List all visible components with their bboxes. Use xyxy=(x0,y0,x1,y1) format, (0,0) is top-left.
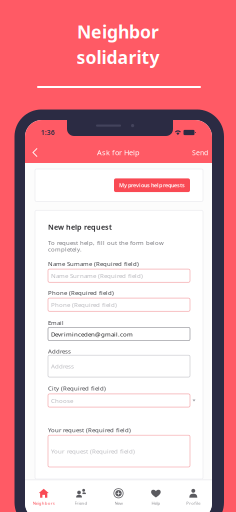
staticText: Name Surname (Required field) xyxy=(48,260,139,268)
button[interactable]: New xyxy=(100,486,137,508)
staticText: New help request xyxy=(48,222,112,232)
staticText: Profile xyxy=(186,500,200,506)
staticText: Address xyxy=(48,347,71,355)
button[interactable]: Neighbors xyxy=(25,486,62,508)
button[interactable]: Help xyxy=(137,486,175,508)
staticText: Neighbors xyxy=(33,500,55,506)
staticText: Neighbor xyxy=(77,20,159,43)
staticText: Friend xyxy=(75,500,88,506)
staticText: Help xyxy=(151,500,160,506)
staticText: Devriminceden@gmail.com xyxy=(51,330,133,338)
staticText: Email xyxy=(48,319,64,327)
staticText: Send xyxy=(192,148,208,157)
button[interactable]: My previous help requests xyxy=(114,178,190,192)
staticText: Name Surname (Required field) xyxy=(51,272,143,280)
staticText: Your request (Required field) xyxy=(51,447,135,455)
staticText: Choose xyxy=(51,396,73,404)
staticText: New xyxy=(114,500,122,506)
staticText: To request help, fill out the form below xyxy=(48,239,164,247)
staticText: solidarity xyxy=(76,45,159,69)
staticText: Phone (Required field) xyxy=(48,289,114,297)
staticText: City (Required field) xyxy=(48,384,106,392)
staticText: Phone (Required field) xyxy=(51,301,117,309)
button[interactable]: Back xyxy=(25,143,44,162)
staticText: completely. xyxy=(48,245,82,253)
button[interactable]: Friend xyxy=(62,486,100,508)
staticText: My previous help requests xyxy=(119,182,185,189)
button[interactable]: Profile xyxy=(175,486,212,508)
staticText: Address xyxy=(51,362,74,370)
staticText: 1:36 xyxy=(41,128,55,137)
staticText: Your request (Required field) xyxy=(48,426,131,434)
button[interactable]: Send xyxy=(186,143,212,162)
staticText: Ask for Help xyxy=(97,148,140,157)
